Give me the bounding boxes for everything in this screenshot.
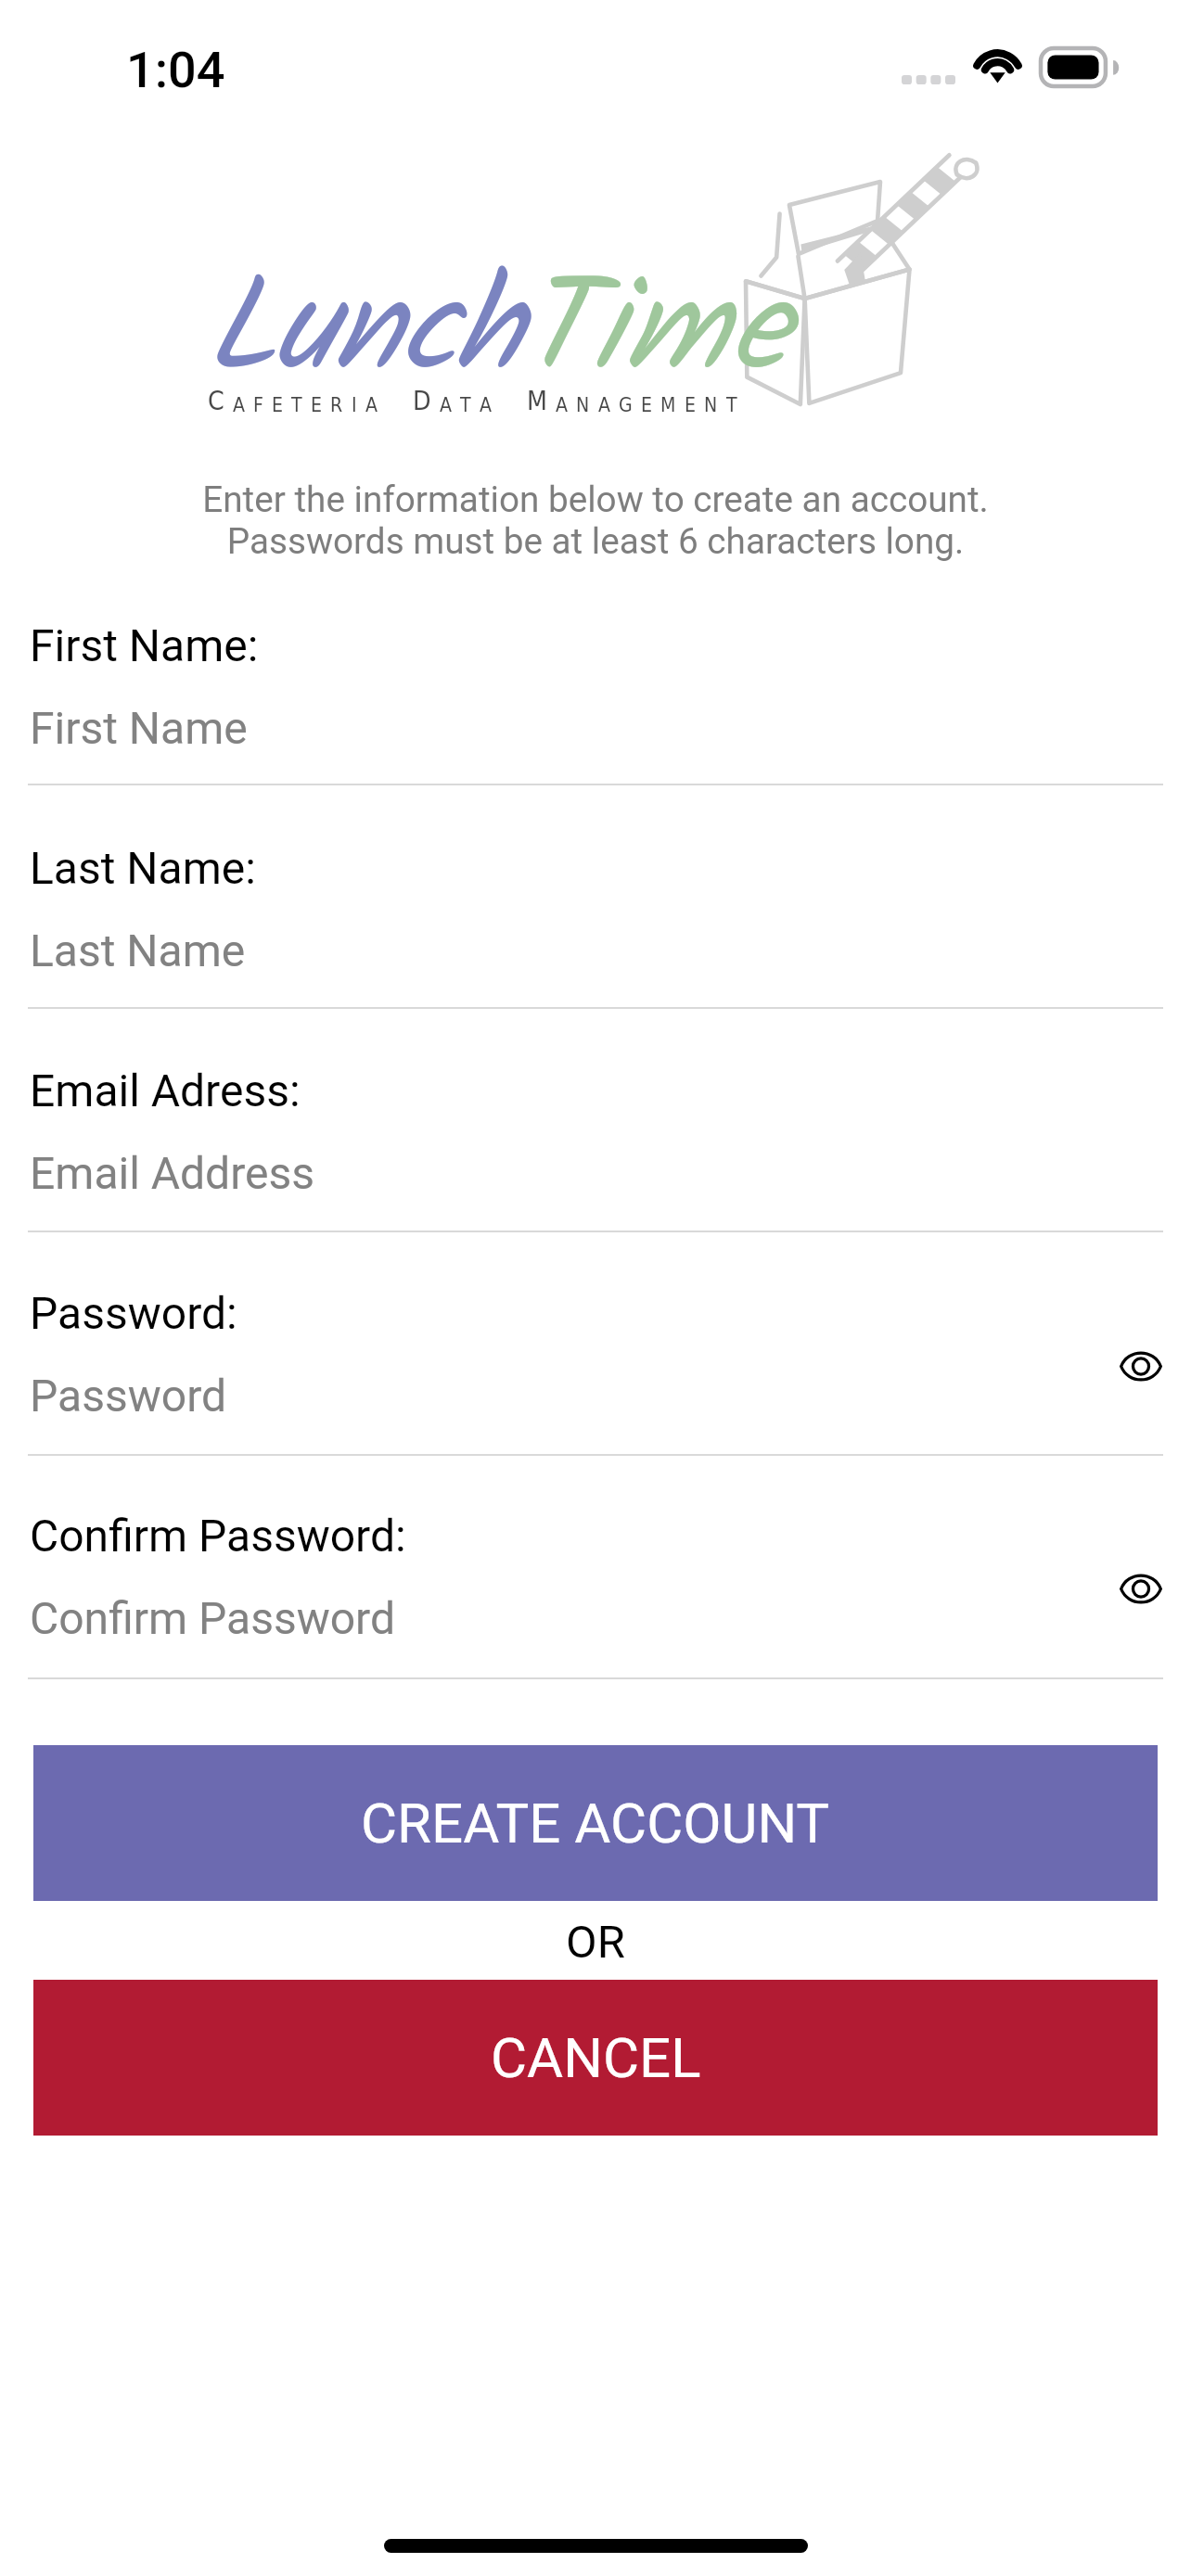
staticText: Password (30, 1370, 227, 1422)
staticText: Lunch (206, 230, 520, 439)
staticText: G (619, 393, 633, 416)
staticText: Enter the information below to create an… (0, 478, 1191, 562)
staticText: Confirm Password (30, 1592, 396, 1644)
staticText: Confirm Password: (30, 1510, 406, 1562)
staticText: Last Name (30, 925, 246, 976)
staticText: OR (566, 1916, 625, 1969)
staticText: T (726, 393, 737, 416)
staticText: A (480, 393, 492, 416)
staticText: E (311, 393, 322, 416)
button[interactable]: Show password (1096, 1321, 1185, 1410)
staticText: N (704, 393, 718, 416)
staticText: CANCEL (491, 2025, 701, 2090)
staticText: A (365, 393, 378, 416)
staticText: M (660, 393, 676, 416)
staticText: Last Name: (30, 842, 256, 894)
staticText: Time (520, 230, 791, 439)
staticText: F (253, 393, 263, 416)
staticText: N (576, 393, 590, 416)
staticText: A (598, 393, 610, 416)
staticText: 1:04 (126, 41, 225, 99)
staticText: First Name: (30, 619, 259, 671)
staticText: Email Adress: (30, 1065, 301, 1116)
staticText: Email Address (30, 1147, 315, 1199)
button[interactable]: CANCEL (33, 1980, 1158, 2136)
button[interactable]: CREATE ACCOUNT (33, 1745, 1158, 1901)
staticText: R (330, 393, 343, 416)
staticText: M (527, 386, 547, 416)
staticText: CREATE ACCOUNT (361, 1791, 830, 1855)
staticText: E (685, 393, 696, 416)
staticText: A (440, 393, 452, 416)
staticText: Password: (30, 1287, 237, 1339)
staticText: A (556, 393, 568, 416)
staticText: E (272, 393, 283, 416)
button[interactable]: Show password (1096, 1544, 1185, 1633)
staticText: T (291, 393, 302, 416)
staticText: C (208, 386, 224, 416)
staticText: A (233, 393, 245, 416)
staticText: T (460, 393, 471, 416)
staticText: I (352, 393, 357, 416)
staticText: D (413, 386, 431, 416)
staticText: First Name (30, 702, 248, 754)
staticText: E (641, 393, 652, 416)
